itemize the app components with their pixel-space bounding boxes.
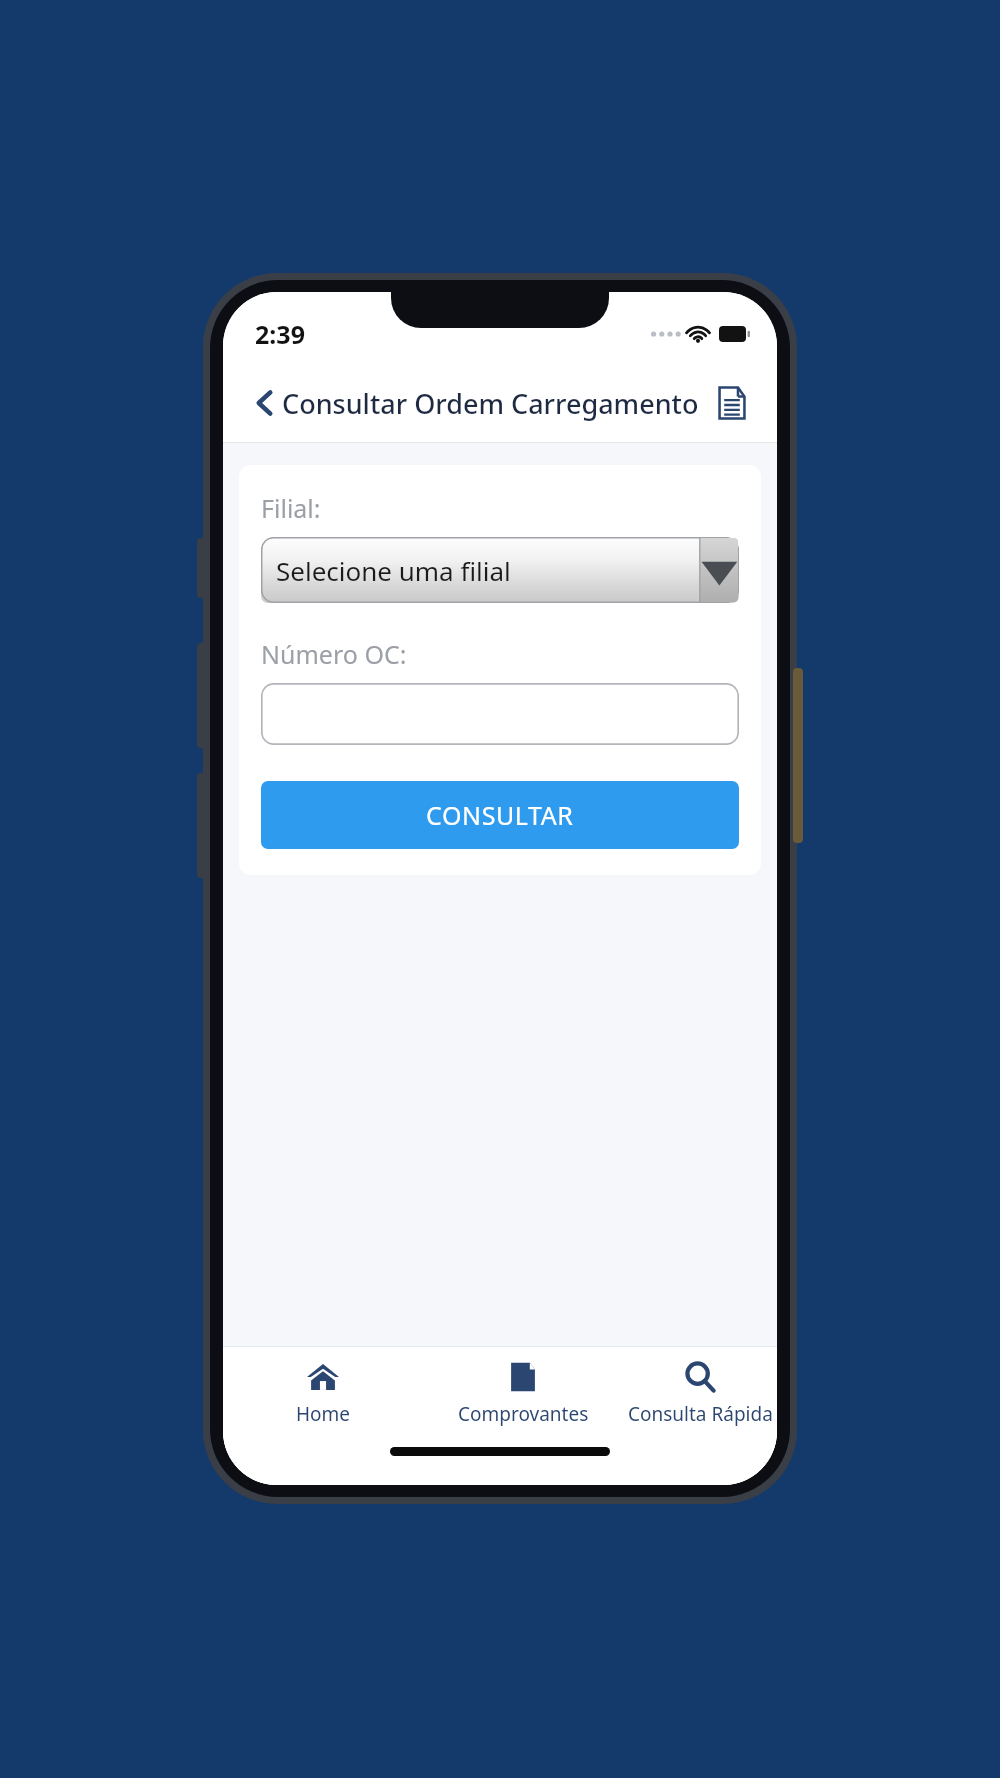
button[interactable] xyxy=(261,683,739,745)
button[interactable]: Voltar xyxy=(237,375,293,431)
staticText: Comprovantes xyxy=(458,1401,589,1427)
staticText: Número OC: xyxy=(261,637,407,671)
staticText: Home xyxy=(296,1401,351,1427)
staticText: 2:39 xyxy=(255,317,305,351)
button[interactable]: Consulta Rápida xyxy=(623,1347,777,1439)
staticText: Consultar Ordem Carregamento xyxy=(282,385,699,422)
staticText: Consulta Rápida xyxy=(628,1401,773,1427)
button[interactable]: Comprovantes xyxy=(423,1347,623,1439)
button[interactable]: Documento xyxy=(705,376,759,430)
button[interactable]: Home xyxy=(223,1347,423,1439)
staticText: CONSULTAR xyxy=(426,798,574,832)
button[interactable]: Selecione uma filial xyxy=(261,537,739,603)
staticText: Selecione uma filial xyxy=(276,553,511,588)
staticText: Filial: xyxy=(261,491,321,525)
button[interactable]: CONSULTAR xyxy=(261,781,739,849)
